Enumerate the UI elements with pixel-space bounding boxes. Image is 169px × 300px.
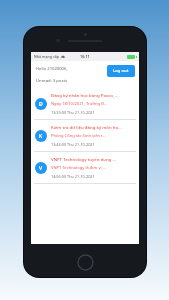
staticText: 13:44:00 Thu 21-10-2021 (51, 142, 95, 147)
staticText: Phòng Công tác Sinh viên t... (51, 133, 106, 139)
staticText: V (39, 165, 43, 172)
staticText: Đăng ký nhận học bổng Posco, ... (51, 92, 119, 98)
staticText: Log out (113, 68, 129, 74)
staticText: Hello 21020006, (36, 66, 68, 72)
staticText: 13:39:00 Thu 21-10-2021 (51, 110, 95, 115)
staticText: 16:11 (80, 54, 90, 59)
button[interactable]: Log out (107, 65, 135, 77)
button[interactable]: K (31, 120, 139, 152)
staticText: 14:06:00 Thu 21-10-2021 (51, 174, 95, 179)
staticText: VNPT Technology là đơn vị ... (51, 165, 106, 171)
button[interactable]: V (31, 152, 139, 184)
staticText: Unread: 3 posts (36, 78, 67, 84)
staticText: VNPT Technology tuyển dụng ... (51, 156, 116, 162)
staticText: Kiểm tra dữ liệu đăng ký môn họ... (51, 124, 122, 130)
staticText: Đ (39, 101, 43, 108)
button[interactable]: Đ (31, 88, 139, 120)
staticText: K (39, 133, 43, 140)
staticText: Ngày 18/10/2021, Trường Đ... (51, 101, 108, 107)
staticText: Nhà mạng cấp (34, 54, 59, 59)
